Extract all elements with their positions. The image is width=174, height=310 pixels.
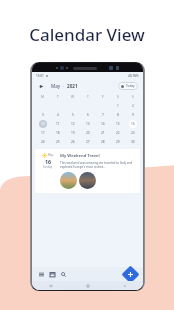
button[interactable]: 21 — [95, 128, 110, 137]
staticText: 13 — [86, 122, 90, 126]
staticText: F — [102, 95, 104, 99]
staticText: 29 — [116, 140, 120, 144]
staticText: May — [51, 83, 61, 89]
button[interactable]: Travel photo — [60, 172, 77, 189]
button[interactable]: 2 — [125, 101, 140, 110]
staticText: 21 — [101, 131, 105, 135]
staticText: 16 — [45, 158, 52, 165]
staticText: May — [48, 153, 54, 157]
staticText: 24 — [41, 140, 45, 144]
staticText: 4 — [57, 113, 59, 117]
button[interactable]: 16 — [125, 119, 140, 128]
button[interactable]: 18 — [50, 128, 65, 137]
staticText: · — [63, 83, 65, 89]
button[interactable]: 14 — [95, 119, 110, 128]
button[interactable]: May — [51, 83, 78, 89]
staticText: 26 — [71, 140, 75, 144]
button[interactable]: Add event — [121, 265, 140, 284]
staticText: 14 — [101, 122, 105, 126]
button[interactable]: 28 — [95, 137, 110, 146]
staticText: 22 — [116, 131, 120, 135]
button[interactable]: Travel photo — [79, 172, 96, 189]
staticText: 23 — [131, 131, 135, 135]
staticText: 17 — [41, 131, 45, 135]
staticText: This weekend was amazing we traveled to … — [60, 161, 136, 169]
staticText: T — [87, 95, 89, 99]
button[interactable]: 5 — [65, 110, 80, 119]
staticText: 6 — [87, 113, 89, 117]
button[interactable]: Recents — [32, 281, 69, 290]
button[interactable]: 19 — [65, 128, 80, 137]
button[interactable]: 23 — [125, 128, 140, 137]
button[interactable]: 13 — [80, 119, 95, 128]
button[interactable]: 11 — [50, 119, 65, 128]
staticText: 3 — [42, 113, 44, 117]
staticText: S — [132, 95, 134, 99]
staticText: 15:01 — [36, 74, 44, 78]
staticText: 9 — [132, 113, 134, 117]
staticText: 11 — [56, 122, 60, 126]
button[interactable]: 1 — [110, 101, 125, 110]
staticText: S — [117, 95, 119, 99]
staticText: M — [41, 95, 44, 99]
button[interactable]: 12 — [65, 119, 80, 128]
staticText: 10 — [41, 122, 45, 126]
button[interactable]: Back — [37, 82, 46, 91]
staticText: 28 — [101, 140, 105, 144]
button[interactable]: Back — [106, 281, 143, 290]
button[interactable]: Today — [118, 82, 138, 90]
button[interactable]: 20 — [80, 128, 95, 137]
button[interactable]: 10 — [35, 119, 50, 128]
staticText: 7 — [102, 113, 104, 117]
staticText: 8 — [117, 113, 119, 117]
button[interactable]: 15 — [110, 119, 125, 128]
staticText: 25 — [56, 140, 60, 144]
button[interactable]: Search — [59, 270, 68, 279]
button[interactable]: 29 — [110, 137, 125, 146]
button[interactable]: 3 — [35, 110, 50, 119]
staticText: W — [71, 95, 74, 99]
staticText: Today — [126, 84, 135, 88]
button[interactable]: 6 — [80, 110, 95, 119]
staticText: 15 — [116, 122, 120, 126]
button[interactable]: 25 — [50, 137, 65, 146]
staticText: 12 — [71, 122, 75, 126]
staticText: 16 — [131, 122, 135, 126]
button[interactable]: Menu — [37, 270, 46, 279]
button[interactable]: 22 — [110, 128, 125, 137]
staticText: Calendar View — [0, 23, 174, 46]
staticText: 30 — [131, 140, 135, 144]
button[interactable]: 27 — [80, 137, 95, 146]
staticText: 2 — [132, 104, 134, 108]
button[interactable]: Home — [69, 281, 106, 290]
button[interactable]: 9 — [125, 110, 140, 119]
staticText: 27 — [86, 140, 90, 144]
staticText: Sunday — [43, 165, 53, 169]
staticText: T — [57, 95, 59, 99]
staticText: 2021 — [67, 83, 78, 89]
button[interactable]: 30 — [125, 137, 140, 146]
button[interactable]: 26 — [65, 137, 80, 146]
button[interactable]: 8 — [110, 110, 125, 119]
staticText: 19 — [71, 131, 75, 135]
button[interactable]: Calendar — [48, 270, 57, 279]
staticText: 18 — [56, 131, 60, 135]
button[interactable]: 7 — [95, 110, 110, 119]
staticText: 5 — [72, 113, 74, 117]
staticText: 20 — [86, 131, 90, 135]
button[interactable]: 17 — [35, 128, 50, 137]
button[interactable]: 24 — [35, 137, 50, 146]
button[interactable]: 4 — [50, 110, 65, 119]
staticText: My Weekend Travel — [60, 153, 100, 159]
staticText: 1 — [117, 104, 119, 108]
staticText: 4G 96% — [128, 74, 139, 78]
